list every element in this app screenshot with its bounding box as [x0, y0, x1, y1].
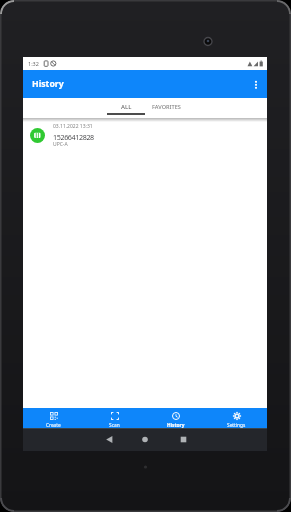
staticText: ALL — [121, 103, 132, 111]
staticText: UPC-A — [53, 141, 68, 148]
staticText: Settings — [227, 422, 246, 428]
staticText: Create — [46, 422, 61, 428]
staticText: History — [167, 422, 185, 428]
button[interactable] — [105, 428, 186, 451]
button[interactable]: Settings — [206, 408, 267, 428]
button[interactable]: Scan — [84, 408, 145, 428]
staticText: 15266412828 — [53, 132, 94, 142]
button[interactable]: FAVORITES — [145, 98, 187, 115]
staticText: FAVORITES — [152, 103, 181, 111]
button[interactable]: Create — [23, 408, 84, 428]
staticText: 03.11.2022 13:31 — [53, 123, 93, 130]
button[interactable]: ALL — [107, 98, 145, 115]
staticText: 1:32 — [28, 60, 39, 67]
button[interactable] — [23, 428, 105, 451]
button[interactable] — [247, 74, 267, 94]
button[interactable]: 03.11.2022 13:31 — [30, 122, 267, 149]
staticText: Scan — [109, 422, 120, 428]
button[interactable]: History — [145, 408, 206, 428]
button[interactable] — [186, 428, 267, 451]
staticText: History — [32, 78, 64, 90]
